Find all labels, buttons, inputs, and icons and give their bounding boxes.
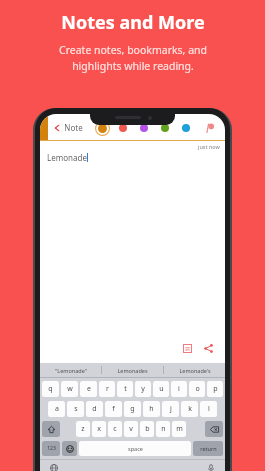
staticText: y [141,384,145,394]
button[interactable]: n [156,421,170,437]
button[interactable]: Bookmark [203,121,217,135]
staticText: p [213,384,218,394]
staticText: l [208,404,210,414]
button[interactable]: h [143,401,160,417]
button[interactable]: Note [52,122,84,133]
button[interactable]: v [124,421,138,437]
button[interactable]: Emoji [62,441,77,456]
staticText: "Lemonade" [55,367,87,374]
button[interactable]: Lemonades [102,363,163,377]
button[interactable]: o [189,381,205,397]
button[interactable]: "Lemonade" [40,363,101,377]
button[interactable]: Save [180,341,194,355]
button[interactable]: Colour 3 [157,120,173,136]
button[interactable]: u [153,381,169,397]
staticText: 123 [47,445,56,452]
button[interactable]: r [99,381,115,397]
staticText: Notes and More [61,10,205,35]
staticText: q [48,384,53,394]
button[interactable]: l [200,401,217,417]
button[interactable]: b [140,421,154,437]
staticText: Lemonade's [179,367,211,374]
staticText: r [106,384,109,394]
staticText: t [124,384,127,394]
button[interactable]: Dictate [205,462,217,471]
button[interactable]: Colour 2 [136,120,152,136]
staticText: n [161,424,166,434]
staticText: just now [198,143,220,150]
staticText: j [170,404,172,414]
staticText: m [176,424,183,434]
button[interactable]: Colour 0 [94,120,110,136]
button[interactable]: Share [201,341,215,355]
button[interactable]: f [105,401,122,417]
staticText: return [200,445,217,452]
staticText: h [149,404,154,414]
staticText: highlights while reading. [72,59,194,73]
staticText: Create notes, bookmarks, and [59,43,207,57]
staticText: space [128,445,143,452]
button[interactable]: 123 [42,441,60,456]
button[interactable]: d [86,401,103,417]
button[interactable]: k [181,401,198,417]
staticText: x [97,424,101,434]
staticText: d [92,404,97,414]
button[interactable]: j [162,401,179,417]
staticText: a [55,404,59,414]
staticText: s [74,404,78,414]
button[interactable]: a [48,401,65,417]
button[interactable]: z [76,421,90,437]
staticText: w [67,384,73,394]
button[interactable]: c [108,421,122,437]
button[interactable]: t [117,381,133,397]
staticText: g [130,404,135,414]
button[interactable]: space [79,441,191,456]
button[interactable]: return [193,441,223,456]
staticText: b [145,424,150,434]
staticText: k [188,404,192,414]
button[interactable]: Shift [42,421,60,437]
button[interactable]: Colour 1 [115,120,131,136]
button[interactable]: p [207,381,223,397]
staticText: v [129,424,133,434]
button[interactable]: m [172,421,186,437]
button[interactable]: i [171,381,187,397]
button[interactable]: Change keyboard [48,462,60,471]
button[interactable]: Lemonade's [164,363,225,377]
button[interactable]: x [92,421,106,437]
button[interactable]: e [80,381,97,397]
staticText: z [81,424,85,434]
button[interactable]: g [124,401,141,417]
staticText: Note [64,122,83,133]
staticText: Lemonade [47,152,87,163]
staticText: i [178,384,180,394]
button[interactable]: y [135,381,151,397]
staticText: Lemonades [117,367,148,374]
button[interactable]: q [42,381,59,397]
button[interactable]: Colour 4 [178,120,194,136]
staticText: c [113,424,117,434]
button[interactable]: Backspace [205,421,223,437]
staticText: o [195,384,200,394]
button[interactable]: s [67,401,84,417]
staticText: f [112,404,115,414]
button[interactable]: w [61,381,78,397]
staticText: e [87,384,91,394]
staticText: u [159,384,164,394]
